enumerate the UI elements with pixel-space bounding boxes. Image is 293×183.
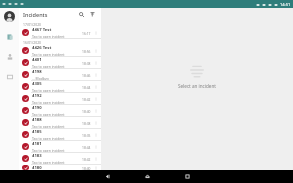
staticText: 4180 — [32, 165, 42, 170]
staticText: … Modbyg — [32, 76, 49, 80]
staticText: 16/01/2020 — [23, 40, 42, 45]
button[interactable]: Recents — [180, 170, 194, 183]
staticText: 18:40 — [82, 166, 91, 170]
staticText: Tap to open incident — [32, 88, 65, 92]
staticText: 4305 — [32, 81, 42, 87]
staticText: Tap to open incident — [32, 136, 65, 140]
staticText: 4198 — [32, 69, 42, 75]
button[interactable]: 4180 — [19, 165, 101, 170]
button[interactable]: 4467 Test — [19, 27, 101, 38]
button[interactable]: 4426 Test — [19, 45, 101, 56]
button[interactable]: Account — [4, 11, 15, 22]
button[interactable]: More options — [93, 84, 99, 90]
staticText: 18:46 — [82, 73, 91, 77]
button[interactable]: 4185 — [19, 129, 101, 140]
staticText: Incidents — [23, 11, 48, 18]
button[interactable]: 4401 — [19, 57, 101, 68]
button[interactable]: 4198 — [19, 69, 101, 80]
staticText: 4188 — [32, 117, 42, 123]
button[interactable]: More options — [93, 144, 99, 150]
button[interactable]: 4192 — [19, 93, 101, 104]
button[interactable]: 4183 — [19, 153, 101, 164]
staticText: 18:38 — [82, 61, 91, 65]
staticText: 18:40 — [82, 109, 91, 113]
staticText: Tap to open incident — [32, 64, 65, 68]
staticText: 4426 Test — [32, 45, 52, 51]
staticText: 18:44 — [82, 85, 91, 89]
staticText: 18:35 — [82, 133, 91, 137]
button[interactable]: More options — [93, 96, 99, 102]
button[interactable]: More options — [93, 48, 99, 54]
button[interactable]: Back — [100, 170, 114, 183]
staticText: 4183 — [32, 153, 42, 159]
staticText: 4181 — [32, 141, 42, 147]
staticText: 18:42 — [82, 97, 91, 101]
staticText: 4190 — [32, 105, 42, 111]
staticText: 4467 Test — [32, 27, 52, 33]
button[interactable]: More options — [93, 60, 99, 66]
button[interactable]: More options — [93, 108, 99, 114]
button[interactable]: People — [3, 50, 16, 63]
staticText: 16:17 — [82, 31, 91, 35]
staticText: 4185 — [32, 129, 42, 135]
staticText: Tap to open incident — [32, 112, 65, 116]
button[interactable]: Search — [77, 10, 86, 19]
staticText: 4192 — [32, 93, 42, 99]
button[interactable]: Archive — [3, 70, 16, 83]
staticText: Select an incident — [178, 83, 216, 89]
button[interactable]: Filter — [88, 10, 97, 19]
staticText: Tap to open incident — [32, 148, 65, 152]
staticText: 18:56 — [82, 49, 91, 53]
button[interactable]: More options — [93, 165, 99, 170]
button[interactable]: Home — [140, 170, 154, 183]
staticText: 17/01/2020 — [23, 22, 42, 27]
button[interactable]: 4305 — [19, 81, 101, 92]
staticText: 18:42 — [82, 157, 91, 161]
staticText: Tap to open incident — [32, 160, 65, 164]
button[interactable]: More options — [93, 132, 99, 138]
staticText: Tap to open incident — [32, 124, 65, 128]
staticText: Tap to open incident — [32, 100, 65, 104]
staticText: Tap to open incident — [32, 34, 65, 38]
button[interactable]: 4188 — [19, 117, 101, 128]
button[interactable]: 4190 — [19, 105, 101, 116]
staticText: 4401 — [32, 57, 42, 63]
button[interactable]: More options — [93, 72, 99, 78]
staticText: Tap to open incident — [32, 52, 65, 56]
button[interactable]: Incidents — [3, 30, 16, 43]
button[interactable]: More options — [93, 120, 99, 126]
button[interactable]: More options — [93, 30, 99, 36]
staticText: 14:51 — [280, 2, 291, 7]
staticText: 18:44 — [82, 145, 91, 149]
button[interactable]: More options — [93, 156, 99, 162]
staticText: 18:38 — [82, 121, 91, 125]
button[interactable]: 4181 — [19, 141, 101, 152]
